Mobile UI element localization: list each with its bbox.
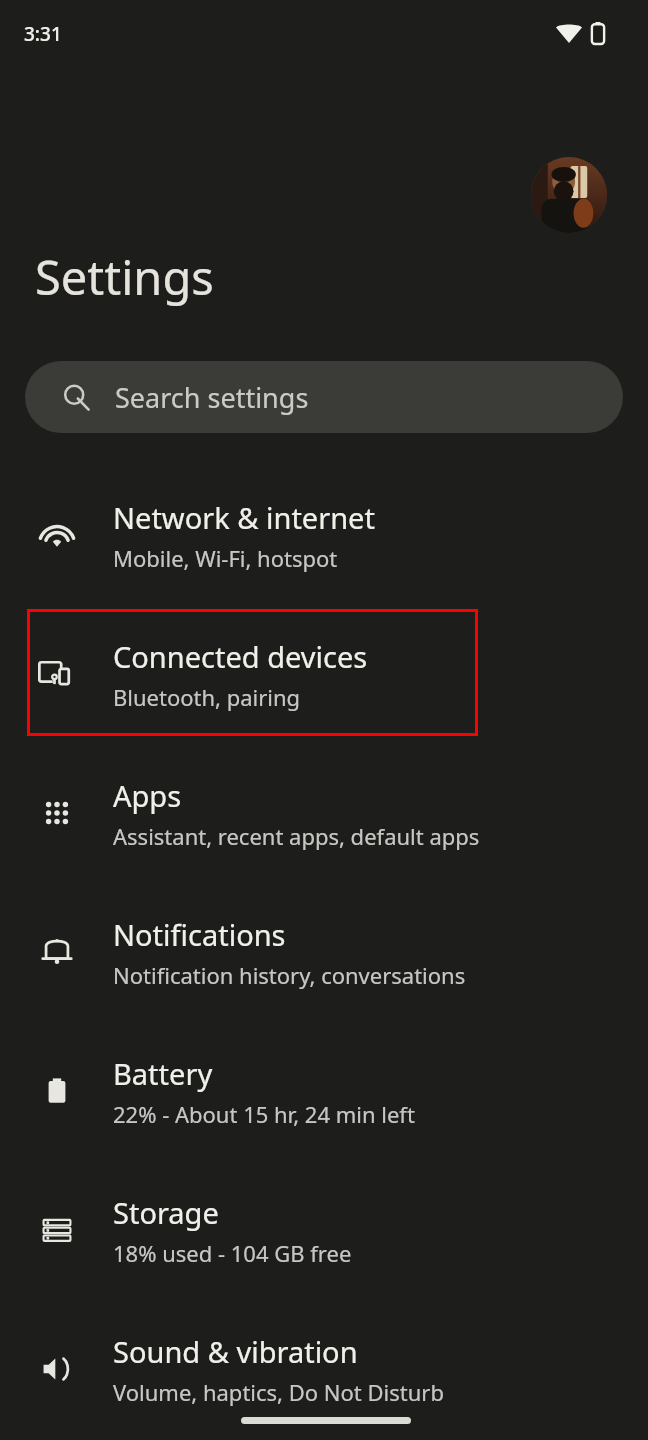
staticText: Volume, haptics, Do Not Disturb (113, 1377, 444, 1407)
staticText: Search settings (115, 379, 309, 416)
button[interactable]: Search settings (25, 361, 623, 433)
staticText: Battery (113, 1054, 213, 1093)
staticText: Notification history, conversations (113, 960, 466, 990)
button[interactable]: Connected devices (0, 609, 648, 739)
staticText: 18% used - 104 GB free (113, 1238, 352, 1268)
staticText: Apps (113, 776, 182, 815)
button[interactable]: Network & internet (0, 470, 648, 600)
staticText: Network & internet (113, 498, 375, 537)
button[interactable]: Notifications (0, 887, 648, 1017)
staticText: Notifications (113, 915, 286, 954)
button[interactable]: Storage (0, 1165, 648, 1295)
staticText: Settings (35, 245, 214, 309)
staticText: 3:31 (24, 21, 62, 47)
staticText: 22% - About 15 hr, 24 min left (113, 1099, 415, 1129)
button[interactable]: Battery (0, 1026, 648, 1156)
staticText: Mobile, Wi-Fi, hotspot (113, 543, 338, 573)
button[interactable]: Apps (0, 748, 648, 878)
button[interactable]: Sound & vibration (0, 1304, 648, 1434)
staticText: Storage (113, 1193, 219, 1232)
staticText: Connected devices (113, 637, 368, 676)
button[interactable]: Account avatar (531, 157, 607, 233)
staticText: Assistant, recent apps, default apps (113, 821, 480, 851)
staticText: Sound & vibration (113, 1332, 358, 1371)
staticText: Bluetooth, pairing (113, 682, 301, 712)
